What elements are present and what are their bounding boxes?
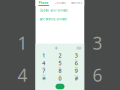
staticText: 4 <box>42 60 45 67</box>
staticText: Favorites <box>71 1 82 5</box>
staticText: DEF <box>75 59 78 61</box>
staticText: ABC <box>58 59 61 61</box>
staticText: Phone <box>39 1 49 5</box>
staticText: ✳ <box>42 75 46 81</box>
staticText: Contacts <box>54 1 65 5</box>
button[interactable]: Contacts <box>52 0 68 6</box>
button[interactable]: Favorites <box>68 0 84 6</box>
staticText: JKL <box>59 67 61 68</box>
staticText: 1 <box>17 31 27 54</box>
staticText: Update your contacts <box>39 9 67 12</box>
staticText: 7 <box>42 67 45 74</box>
button[interactable]: 8 <box>52 68 68 75</box>
staticText: 4 <box>17 63 27 86</box>
button[interactable]: ✳ <box>35 75 52 83</box>
button[interactable]: Call <box>55 84 64 89</box>
button[interactable]: 4 <box>35 60 52 68</box>
staticText: 2 <box>58 52 61 59</box>
button[interactable]: 0 <box>52 75 68 83</box>
staticText: 6 <box>75 60 78 67</box>
button[interactable]: 6 <box>68 60 84 68</box>
staticText: 1 <box>42 52 45 59</box>
button[interactable]: Delete <box>76 47 81 50</box>
button[interactable]: Add contact <box>53 45 59 51</box>
staticText: Sync existing contacts <box>39 17 66 21</box>
staticText: 3 <box>75 52 78 59</box>
button[interactable]: Phone <box>35 0 52 6</box>
button[interactable]: 2 <box>52 53 68 60</box>
staticText: 9 <box>75 67 78 74</box>
staticText: WXYZ <box>74 74 78 76</box>
staticText: PQRS <box>42 74 46 76</box>
button[interactable]: # <box>68 75 84 83</box>
staticText: 8 <box>58 67 61 74</box>
staticText: 0 <box>58 75 61 82</box>
button[interactable]: 3 <box>68 53 84 60</box>
staticText: ✛ <box>54 46 57 50</box>
staticText: 5 <box>58 60 61 67</box>
button[interactable]: 9 <box>68 68 84 75</box>
button[interactable]: Update your contacts <box>35 6 84 15</box>
button[interactable]: 7 <box>35 68 52 75</box>
staticText: TUV <box>58 74 61 76</box>
staticText: 3 <box>92 31 102 54</box>
button[interactable]: 1 <box>35 53 52 60</box>
staticText: # <box>75 75 78 82</box>
button[interactable]: 5 <box>52 60 68 68</box>
staticText: 6 <box>92 63 102 86</box>
button[interactable]: Sync existing contacts <box>35 15 84 23</box>
staticText: MNO <box>75 67 78 68</box>
